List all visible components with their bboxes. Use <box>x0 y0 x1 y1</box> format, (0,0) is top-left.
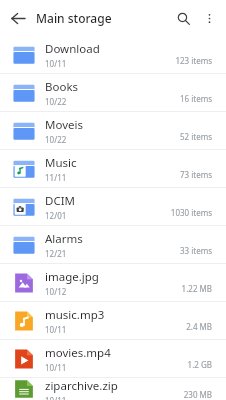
staticText: Moveis <box>45 117 83 133</box>
staticText: Books <box>45 79 79 95</box>
staticText: DCIM <box>45 193 75 209</box>
staticText: 10/11 <box>45 362 67 373</box>
staticText: 52 items <box>179 131 212 142</box>
button[interactable]: Music <box>0 150 226 187</box>
staticText: 1030 items <box>170 207 212 218</box>
staticText: 10/11 <box>45 395 67 400</box>
button[interactable]: Moveis <box>0 112 226 149</box>
staticText: 73 items <box>179 169 212 180</box>
staticText: 123 items <box>175 55 212 66</box>
staticText: movies.mp4 <box>45 345 111 361</box>
staticText: Download <box>45 41 100 57</box>
staticText: image.jpg <box>45 269 99 285</box>
staticText: ziparchive.zip <box>45 378 118 394</box>
button[interactable]: movies.mp4 <box>0 340 226 377</box>
button[interactable]: Back <box>6 6 30 30</box>
staticText: 2.4 MB <box>186 321 212 332</box>
button[interactable]: Alarms <box>0 226 226 263</box>
staticText: 230 MB <box>183 389 212 400</box>
staticText: 12/21 <box>45 248 67 259</box>
button[interactable]: DCIM <box>0 188 226 225</box>
button[interactable]: Download <box>0 36 226 73</box>
staticText: 10/11 <box>45 58 67 69</box>
staticText: 10/22 <box>45 134 67 145</box>
button[interactable]: ziparchive.zip <box>0 378 226 400</box>
staticText: 10/11 <box>45 324 67 335</box>
staticText: 10/12 <box>45 286 67 297</box>
button[interactable]: More options <box>196 5 222 31</box>
staticText: Alarms <box>45 231 83 247</box>
staticText: Music <box>45 155 77 171</box>
staticText: Main storage <box>36 10 112 26</box>
staticText: 1.22 MB <box>181 283 212 294</box>
staticText: 1.2 GB <box>187 359 212 370</box>
staticText: 11/11 <box>45 172 67 183</box>
button[interactable]: image.jpg <box>0 264 226 301</box>
button[interactable]: Books <box>0 74 226 111</box>
button[interactable]: music.mp3 <box>0 302 226 339</box>
staticText: 10/22 <box>45 96 67 107</box>
button[interactable]: Search <box>170 5 196 31</box>
staticText: 16 items <box>179 93 212 104</box>
staticText: 33 items <box>179 245 212 256</box>
staticText: music.mp3 <box>45 307 105 323</box>
staticText: 12/01 <box>45 210 67 221</box>
